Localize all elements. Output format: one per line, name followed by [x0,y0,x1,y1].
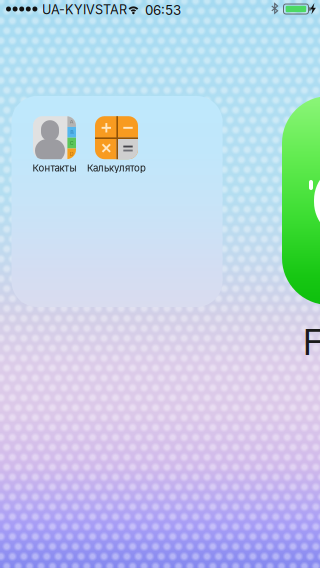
staticText: 06:53 [145,2,181,18]
staticText: D [70,151,74,157]
button[interactable]: Калькулятор [85,116,147,174]
staticText: Контакты [32,162,76,174]
staticText: C [70,140,74,146]
staticText: A [70,118,74,125]
staticText: F [303,320,320,364]
staticText: Калькулятор [87,162,146,174]
staticText: UA-KYIVSTAR [42,2,127,17]
button[interactable]: Сообщения [282,96,320,305]
staticText: B [70,129,73,136]
button[interactable]: A [23,116,85,174]
